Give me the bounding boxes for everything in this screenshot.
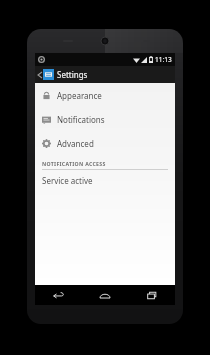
staticText: Advanced: [57, 138, 94, 149]
button[interactable]: Home: [81, 285, 128, 305]
button[interactable]: Service active: [35, 170, 175, 190]
button[interactable]: Navigate up: [37, 68, 43, 82]
button[interactable]: Back: [35, 285, 81, 305]
staticText: Service active: [42, 175, 93, 186]
staticText: NOTIFICATION ACCESS: [42, 160, 106, 167]
button[interactable]: Recents: [128, 285, 175, 305]
staticText: Appearance: [57, 90, 102, 101]
staticText: 11:13: [155, 55, 172, 64]
button[interactable]: Appearance: [35, 83, 175, 107]
button[interactable]: Notifications: [35, 107, 175, 131]
staticText: Settings: [57, 69, 88, 80]
button[interactable]: Advanced: [35, 131, 175, 155]
staticText: Notifications: [57, 114, 105, 125]
